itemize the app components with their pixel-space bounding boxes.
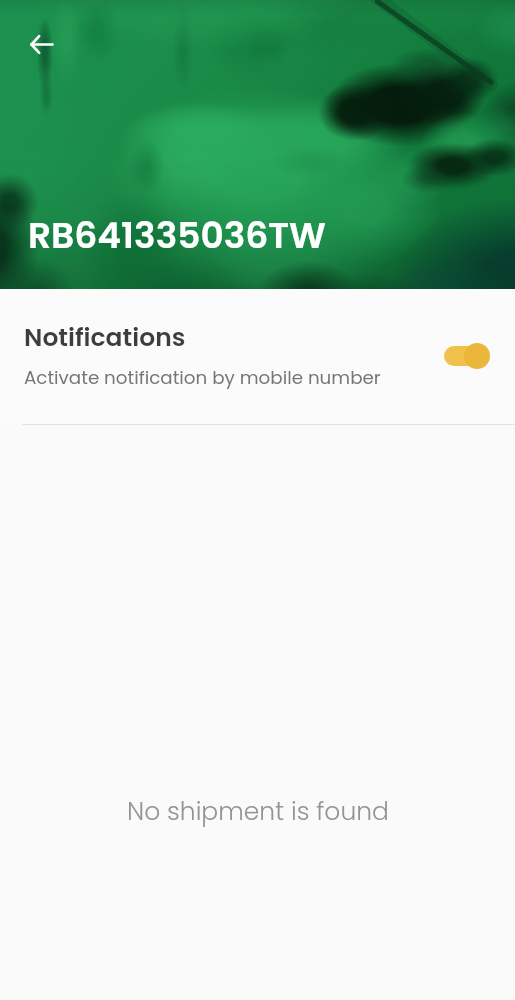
button[interactable]: Notifications toggle bbox=[439, 336, 495, 376]
staticText: Notifications bbox=[24, 320, 186, 355]
staticText: RB641335036TW bbox=[28, 210, 326, 260]
staticText: Activate notification by mobile number bbox=[24, 365, 381, 391]
button[interactable]: Back bbox=[17, 20, 65, 68]
button[interactable]: Notifications bbox=[0, 289, 515, 424]
staticText: No shipment is found bbox=[127, 794, 389, 829]
